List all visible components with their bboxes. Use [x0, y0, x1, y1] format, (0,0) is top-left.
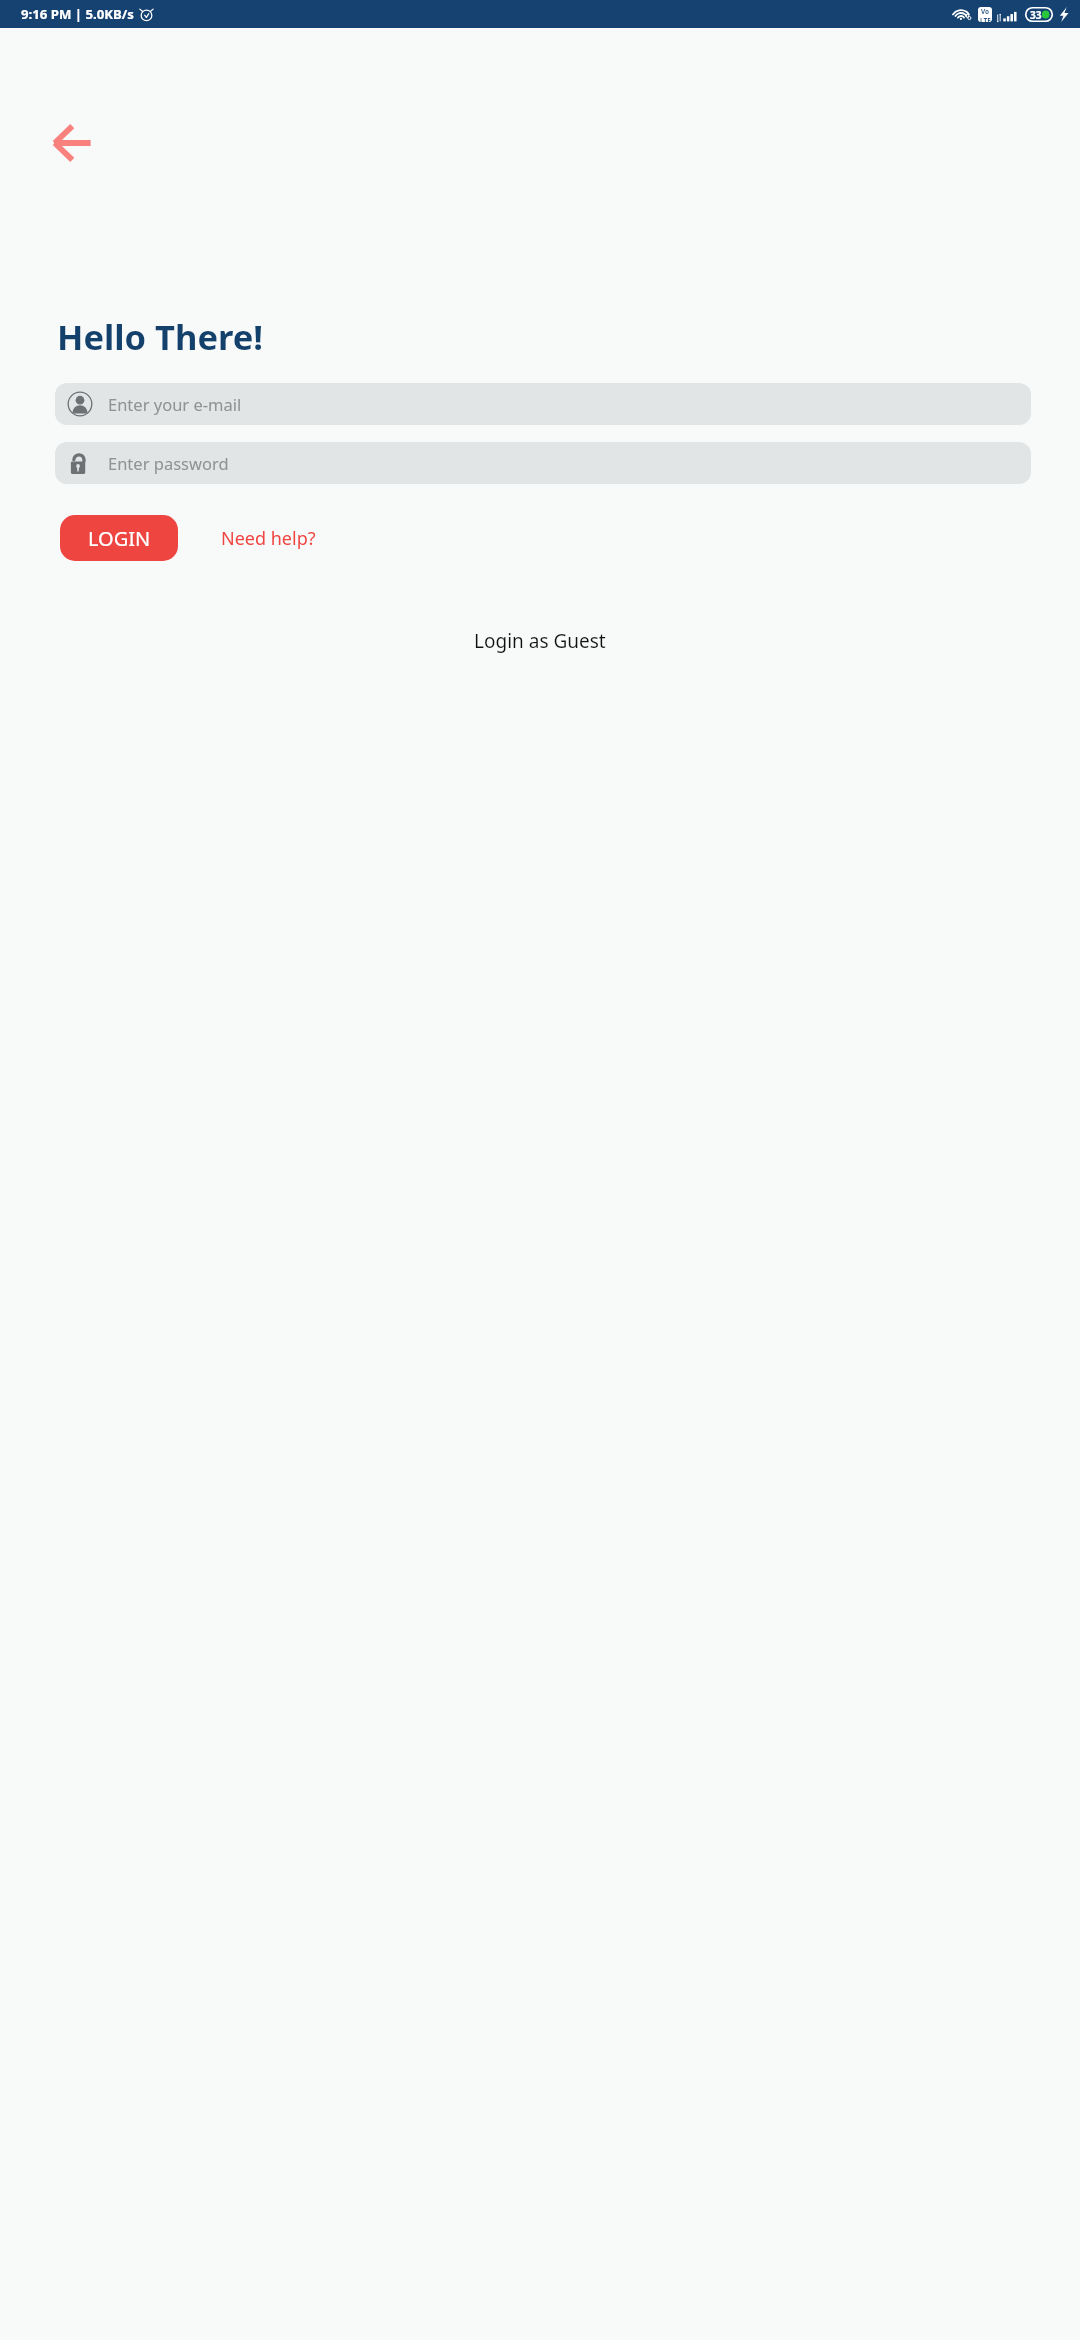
staticText: Need help? — [221, 526, 316, 551]
button[interactable]: Enter your e-mail — [55, 383, 1031, 425]
staticText: 9:16 PM | 5.0KB/s — [21, 5, 134, 23]
button[interactable]: Enter password — [55, 442, 1031, 484]
button[interactable]: Login as Guest — [456, 619, 624, 663]
staticText: Hello There! — [57, 313, 264, 360]
button[interactable]: LOGIN — [60, 515, 178, 561]
staticText: Vo — [981, 7, 990, 16]
button[interactable]: Back — [42, 118, 100, 168]
button[interactable]: Need help? — [213, 516, 324, 561]
staticText: LTE — [980, 16, 991, 22]
staticText: Enter password — [108, 452, 229, 474]
staticText: Login as Guest — [474, 628, 606, 654]
staticText: Enter your e-mail — [108, 393, 242, 415]
staticText: LOGIN — [88, 525, 151, 552]
staticText: 33 — [1030, 8, 1042, 22]
